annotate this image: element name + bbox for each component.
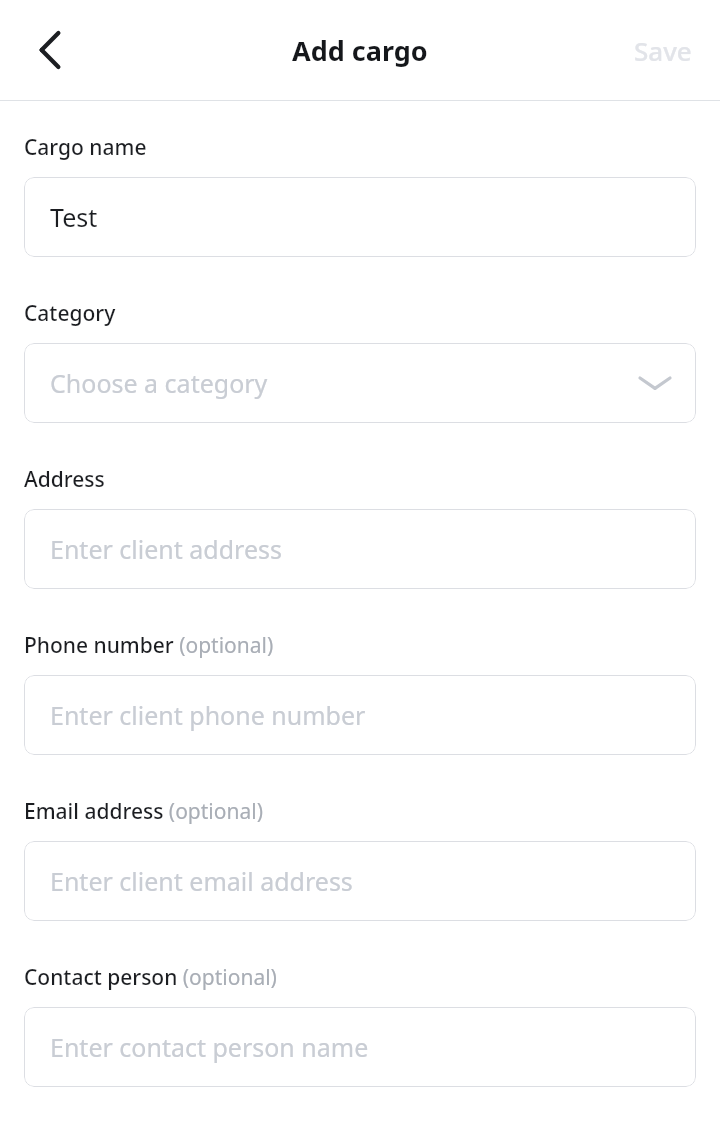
- staticText: Phone number (optional): [24, 631, 274, 660]
- button[interactable]: Cargo name: [24, 177, 696, 257]
- button[interactable]: Back: [18, 18, 82, 82]
- staticText: Email address (optional): [24, 797, 263, 826]
- button[interactable]: Email address: [24, 841, 696, 921]
- staticText: Enter contact person name: [50, 1030, 369, 1064]
- button[interactable]: Save: [622, 23, 704, 78]
- staticText: Category: [24, 299, 116, 328]
- staticText: Enter client phone number: [50, 698, 366, 732]
- button[interactable]: Contact person: [24, 1007, 696, 1087]
- staticText: Choose a category: [50, 366, 268, 400]
- staticText: Add cargo: [292, 32, 428, 69]
- staticText: Contact person (optional): [24, 963, 277, 992]
- staticText: Enter client email address: [50, 864, 353, 898]
- button[interactable]: Category: [24, 343, 696, 423]
- button[interactable]: Address: [24, 509, 696, 589]
- button[interactable]: Phone number: [24, 675, 696, 755]
- staticText: Test: [50, 200, 98, 234]
- staticText: Enter client address: [50, 532, 282, 566]
- staticText: Address: [24, 465, 105, 494]
- staticText: Save: [634, 33, 692, 68]
- staticText: Cargo name: [24, 133, 147, 162]
